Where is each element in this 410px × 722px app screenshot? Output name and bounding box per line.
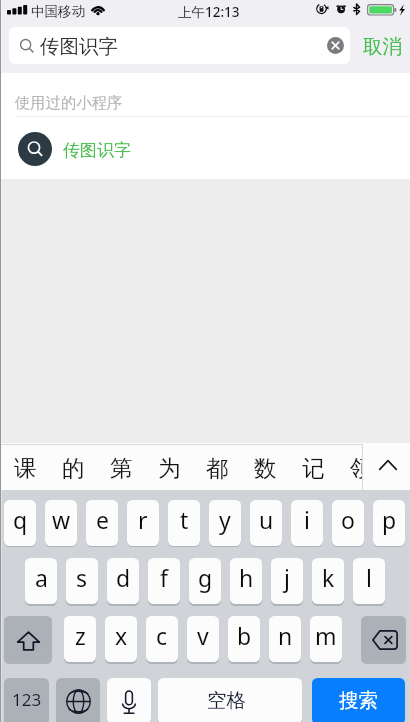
staticText: 取消 <box>363 34 402 59</box>
staticText: 为 <box>158 454 181 482</box>
button[interactable]: l <box>353 558 385 604</box>
button[interactable]: n <box>269 616 301 662</box>
button[interactable]: 都 <box>192 443 240 490</box>
button[interactable]: g <box>189 558 221 604</box>
button[interactable]: f <box>148 558 180 604</box>
button[interactable]: o <box>332 500 364 546</box>
staticText: k <box>322 562 335 593</box>
staticText: 使用过的小程序 <box>15 93 123 112</box>
staticText: o <box>341 504 355 535</box>
staticText: s <box>76 562 88 593</box>
staticText: 中国移动 <box>31 3 85 20</box>
staticText: 数 <box>254 454 277 482</box>
button[interactable]: z <box>64 616 96 662</box>
button[interactable]: d <box>107 558 139 604</box>
button[interactable]: 的 <box>48 443 96 490</box>
staticText: u <box>259 504 274 535</box>
button[interactable]: u <box>250 500 282 546</box>
staticText: p <box>382 504 397 535</box>
button[interactable]: v <box>187 616 219 662</box>
staticText: y <box>219 504 231 535</box>
staticText: a <box>35 562 48 593</box>
button[interactable]: 数 <box>240 443 288 490</box>
staticText: 传图识字 <box>40 34 118 59</box>
staticText: c <box>156 620 168 651</box>
staticText: n <box>278 620 293 651</box>
staticText: 传图识字 <box>63 140 131 161</box>
button[interactable]: r <box>127 500 159 546</box>
button[interactable]: p <box>373 500 405 546</box>
button[interactable]: 为 <box>144 443 192 490</box>
staticText: 课 <box>14 454 37 482</box>
button[interactable]: x <box>105 616 137 662</box>
button[interactable]: s <box>66 558 98 604</box>
staticText: z <box>75 620 86 651</box>
button[interactable]: 传图识字 <box>0 118 410 180</box>
staticText: r <box>138 504 148 535</box>
button[interactable]: y <box>209 500 241 546</box>
staticText: j <box>284 562 290 593</box>
button[interactable]: 课 <box>0 443 48 490</box>
staticText: x <box>115 620 128 651</box>
button[interactable]: 第 <box>96 443 144 490</box>
staticText: 记 <box>302 454 325 482</box>
button[interactable]: c <box>146 616 178 662</box>
button[interactable]: 123 <box>4 678 49 722</box>
button[interactable]: q <box>4 500 36 546</box>
staticText: 领 <box>350 454 373 482</box>
staticText: 第 <box>110 454 133 482</box>
button[interactable]: j <box>271 558 303 604</box>
button[interactable]: k <box>312 558 344 604</box>
staticText: t <box>180 504 189 535</box>
staticText: f <box>160 562 168 593</box>
button[interactable]: b <box>228 616 260 662</box>
staticText: w <box>52 504 71 535</box>
button[interactable]: Switch keyboard <box>56 678 100 722</box>
staticText: d <box>116 562 131 593</box>
button[interactable]: 搜索 <box>312 678 405 722</box>
staticText: 上午12:13 <box>178 3 240 21</box>
button[interactable]: a <box>25 558 57 604</box>
staticText: g <box>198 562 213 593</box>
staticText: 空格 <box>207 688 246 713</box>
staticText: h <box>239 562 254 593</box>
staticText: 都 <box>206 454 229 482</box>
button[interactable]: 领 <box>336 443 384 490</box>
button[interactable]: i <box>291 500 323 546</box>
button[interactable]: Clear text <box>326 36 345 55</box>
staticText: m <box>315 620 337 651</box>
staticText: v <box>197 620 209 651</box>
staticText: i <box>304 504 310 535</box>
button[interactable]: 记 <box>288 443 336 490</box>
staticText: e <box>96 504 109 535</box>
button[interactable]: 传图识字 <box>9 27 350 64</box>
staticText: b <box>237 620 252 651</box>
button[interactable]: Shift <box>4 616 52 662</box>
staticText: q <box>13 504 28 535</box>
button[interactable]: m <box>310 616 342 662</box>
button[interactable]: e <box>86 500 118 546</box>
button[interactable]: Expand candidates <box>363 443 410 490</box>
staticText: 的 <box>62 454 85 482</box>
button[interactable]: Delete <box>361 616 406 662</box>
staticText: 123 <box>12 688 42 711</box>
button[interactable]: w <box>45 500 77 546</box>
button[interactable]: h <box>230 558 262 604</box>
button[interactable]: t <box>168 500 200 546</box>
button[interactable]: Voice input <box>107 678 151 722</box>
staticText: l <box>366 562 372 593</box>
button[interactable]: 取消 <box>354 27 410 64</box>
staticText: 搜索 <box>339 688 378 713</box>
button[interactable]: 空格 <box>158 678 302 722</box>
